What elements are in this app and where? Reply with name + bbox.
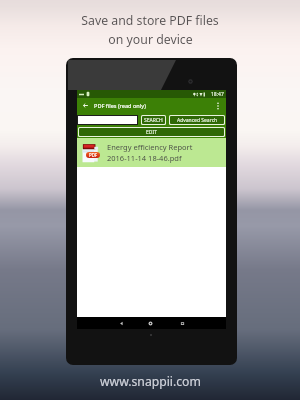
- button[interactable]: Recents: [178, 319, 187, 328]
- button[interactable]: Home: [146, 319, 155, 328]
- button[interactable]: Back: [81, 101, 90, 110]
- button[interactable]: Advanced Search: [170, 116, 224, 124]
- staticText: SEARCH: [144, 117, 163, 124]
- staticText: PDF: [89, 152, 98, 158]
- staticText: PDF files (read only): [94, 102, 146, 110]
- button[interactable]: Back: [117, 319, 126, 328]
- button[interactable]: More options: [211, 99, 225, 113]
- staticText: 2016-11-14 18-46.pdf: [107, 153, 182, 163]
- staticText: on your device: [108, 31, 193, 48]
- staticText: Advanced Search: [177, 117, 218, 124]
- staticText: 18:47: [211, 91, 224, 98]
- staticText: www.snappii.com: [100, 373, 201, 390]
- staticText: Energy efficiency Report: [107, 142, 193, 152]
- staticText: EDIT: [146, 129, 157, 136]
- button[interactable]: SEARCH: [142, 116, 165, 124]
- button[interactable]: EDIT: [79, 128, 224, 136]
- staticText: Save and store PDF files: [81, 12, 219, 29]
- button[interactable]: PDF: [77, 138, 226, 167]
